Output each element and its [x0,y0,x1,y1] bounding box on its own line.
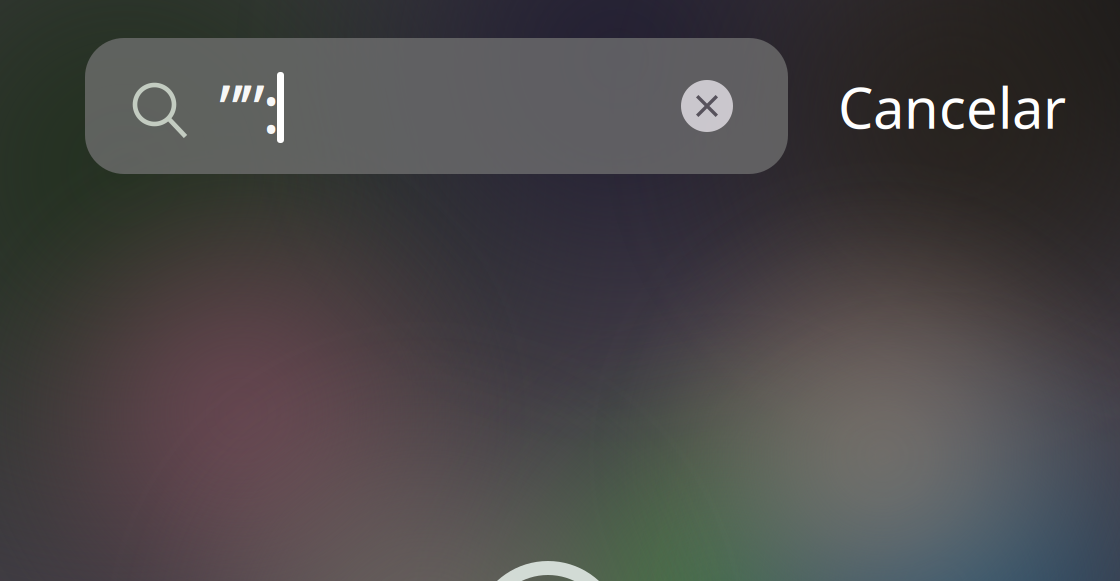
button[interactable]: Clear text [681,80,733,132]
staticText: ””: [219,62,280,152]
button[interactable]: ””: [0,0,703,136]
staticText: Cancelar [838,70,1066,144]
button[interactable]: Cancelar [838,76,1098,138]
